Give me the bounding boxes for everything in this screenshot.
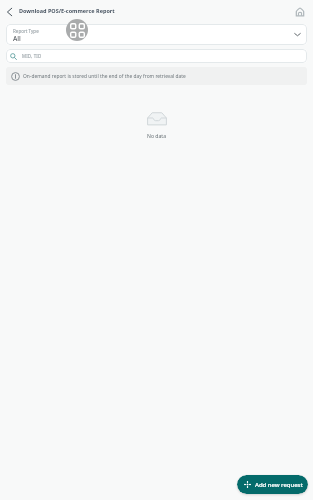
button[interactable]: Back xyxy=(0,1,19,20)
staticText: MID, TID xyxy=(22,53,42,59)
button[interactable]: MID, TID xyxy=(6,49,307,63)
button[interactable]: Report Type xyxy=(6,24,307,45)
button[interactable]: Home xyxy=(290,0,311,21)
button[interactable]: Add new request xyxy=(237,475,308,494)
staticText: Add new request xyxy=(255,481,303,489)
staticText: All xyxy=(13,34,21,43)
staticText: No data xyxy=(147,133,167,140)
staticText: On-demand report is stored until the end… xyxy=(23,73,186,80)
staticText: Download POS/E-commerce Report xyxy=(19,7,115,14)
staticText: Report Type xyxy=(13,28,39,34)
